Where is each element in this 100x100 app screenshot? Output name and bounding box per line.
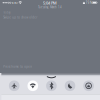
- staticText: AT&T: [12, 1, 18, 4]
- staticText: Today: [3, 11, 10, 14]
- button[interactable]: Bluetooth: [46, 80, 57, 91]
- staticText: Swipe up to show older: [3, 16, 37, 19]
- staticText: Press home to open: [3, 65, 32, 68]
- button[interactable]: Wi-Fi: [27, 80, 38, 91]
- button[interactable]: Do Not Disturb: [65, 80, 75, 91]
- staticText: Tuesday, March 14: [38, 5, 62, 9]
- button[interactable]: Airplane Mode: [9, 80, 19, 91]
- button[interactable]: Rotation Lock: [83, 80, 94, 91]
- staticText: 75%: [86, 1, 92, 4]
- staticText: 5:04 PM: [43, 0, 57, 5]
